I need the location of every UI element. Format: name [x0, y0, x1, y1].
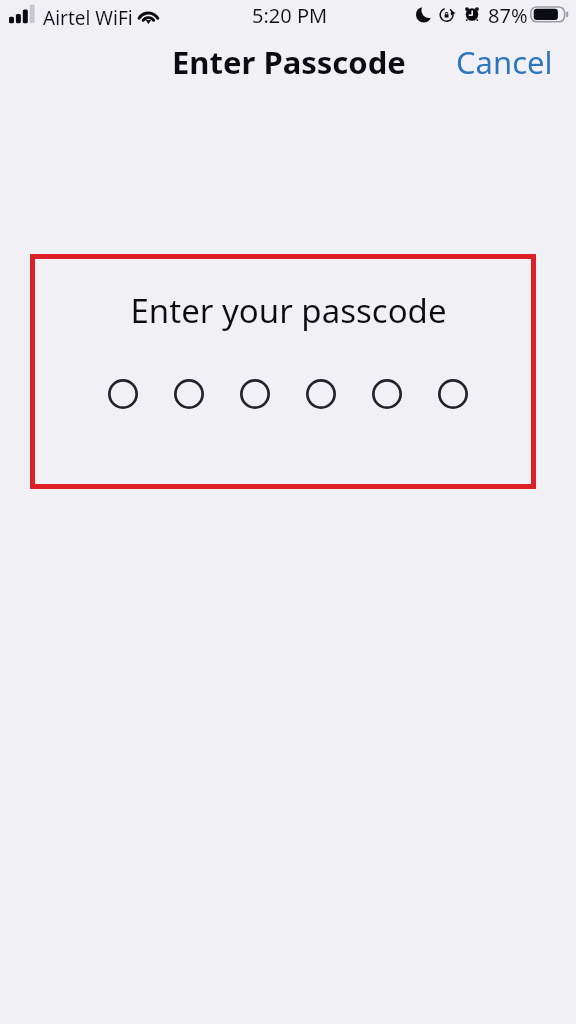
- other: Do Not Disturb on: [416, 7, 433, 24]
- other: Rotation lock on: [440, 7, 458, 24]
- other: Alarm set: [465, 6, 480, 22]
- staticText: Enter your passcode: [130, 288, 447, 333]
- staticText: Enter Passcode: [172, 41, 406, 83]
- other: Cellular signal strength: [9, 4, 36, 24]
- staticText: Cancel: [456, 41, 553, 83]
- staticText: 5:20 PM: [252, 2, 328, 29]
- button[interactable]: Cancel: [438, 34, 571, 90]
- staticText: Airtel WiFi: [43, 5, 133, 31]
- staticText: 87%: [488, 2, 528, 29]
- other: Battery 87 percent: [530, 5, 570, 23]
- button[interactable]: Passcode entry field, 6 digits: [108, 379, 468, 409]
- other: Wi-Fi connected: [136, 4, 162, 24]
